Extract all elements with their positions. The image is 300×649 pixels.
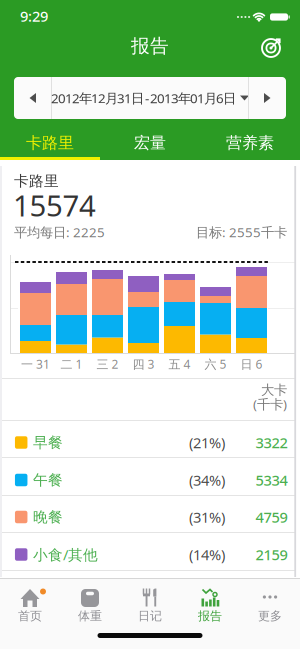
staticText: 早餐	[33, 433, 63, 451]
staticText: (31%)	[189, 507, 225, 527]
staticText: 15574	[13, 185, 96, 224]
button[interactable]	[254, 29, 290, 65]
staticText: 宏量	[134, 133, 166, 153]
staticText: (千卡)	[253, 395, 287, 413]
button[interactable]	[249, 77, 286, 119]
button[interactable]: 2012年12月31日 - 2013年01月6日	[52, 77, 248, 119]
staticText: 3322	[255, 433, 287, 452]
staticText: 一 31	[21, 356, 50, 372]
staticText: 营养素	[226, 133, 274, 153]
staticText: 四 3	[132, 356, 154, 372]
staticText: 卡路里	[26, 133, 74, 153]
staticText: 首页	[18, 609, 42, 623]
button[interactable]: 日记	[120, 578, 180, 634]
staticText: (21%)	[189, 433, 225, 452]
button[interactable]: 体重	[60, 578, 120, 634]
staticText: 卡路里	[14, 172, 59, 190]
staticText: (14%)	[189, 545, 225, 564]
staticText: 9:29	[20, 6, 48, 26]
staticText: 日 6	[240, 356, 262, 372]
button[interactable]: 更多	[240, 578, 300, 634]
staticText: 5334	[255, 470, 287, 490]
button[interactable]: 首页	[0, 578, 60, 634]
button[interactable]: 宏量	[100, 129, 200, 157]
staticText: 二 1	[60, 356, 82, 372]
staticText: 报告	[131, 34, 169, 57]
staticText: 体重	[78, 609, 102, 623]
staticText: 更多	[258, 609, 282, 623]
staticText: 六 5	[204, 356, 226, 372]
staticText: 4759	[255, 507, 287, 527]
button[interactable]: 卡路里	[0, 129, 100, 157]
staticText: 小食/其他	[33, 545, 98, 564]
staticText: 2012年12月31日 - 2013年01月6日	[51, 89, 236, 107]
button[interactable]: 营养素	[200, 129, 300, 157]
staticText: 三 2	[96, 356, 118, 372]
staticText: 日记	[138, 609, 162, 623]
staticText: 平均每日: 2225	[14, 223, 105, 241]
button[interactable]: 报告	[180, 578, 240, 634]
staticText: 大卡	[261, 382, 287, 398]
button[interactable]	[14, 77, 51, 119]
staticText: 晚餐	[33, 508, 63, 526]
staticText: 报告	[198, 609, 222, 623]
staticText: 午餐	[33, 471, 63, 489]
staticText: (34%)	[189, 470, 225, 490]
staticText: 2159	[255, 545, 287, 564]
staticText: 五 4	[168, 356, 190, 372]
staticText: 目标: 2555千卡	[196, 223, 287, 241]
